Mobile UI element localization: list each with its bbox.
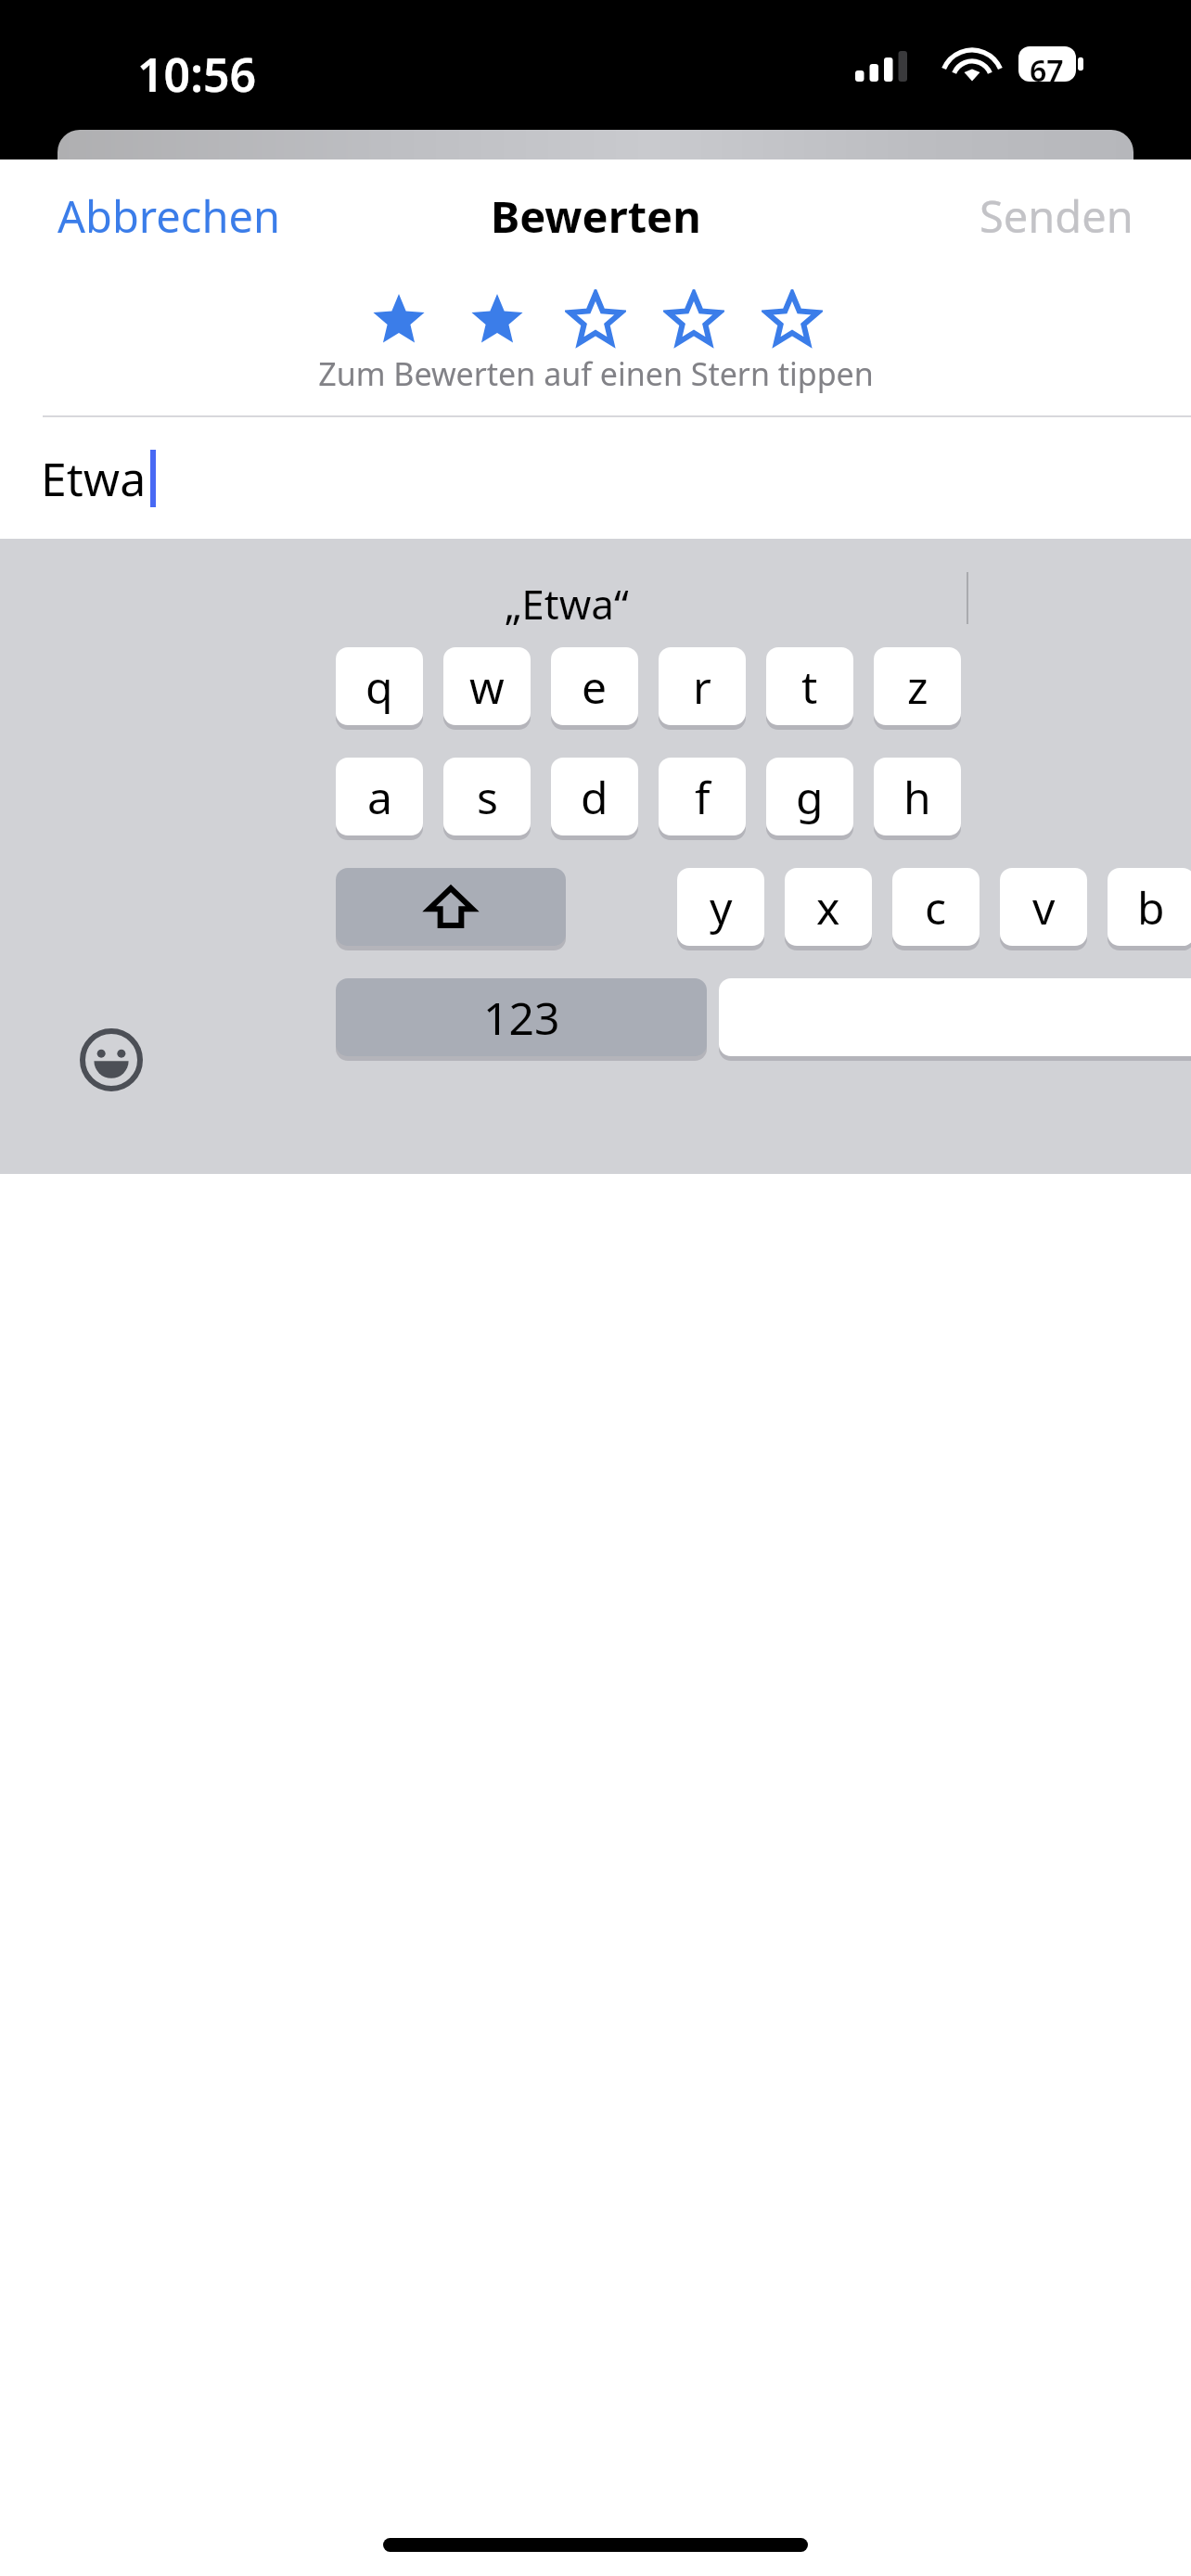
staticText: s <box>477 767 498 827</box>
staticText: c <box>925 877 947 937</box>
staticText: „Etwa“ <box>505 576 629 631</box>
button[interactable]: a <box>336 758 423 835</box>
staticText: e <box>582 657 608 717</box>
button[interactable]: „Etwa“ <box>482 567 651 641</box>
staticText: w <box>469 657 505 717</box>
staticText: Abbrechen <box>58 186 280 246</box>
staticText: b <box>1137 877 1165 937</box>
staticText: 123 <box>483 988 560 1048</box>
button[interactable]: Emoji <box>74 1023 148 1097</box>
staticText: r <box>693 657 711 717</box>
button[interactable]: Stern 2 von 5 <box>467 289 528 351</box>
button[interactable]: Etwa <box>0 417 1191 539</box>
button[interactable]: h <box>874 758 961 835</box>
staticText: 67 <box>1030 50 1064 91</box>
button[interactable]: v <box>1000 868 1087 946</box>
button[interactable]: s <box>443 758 531 835</box>
staticText: Senden <box>980 186 1133 246</box>
button[interactable]: Senden <box>959 173 1154 259</box>
staticText: t <box>801 657 818 717</box>
button[interactable]: c <box>892 868 980 946</box>
staticText: f <box>695 767 711 827</box>
staticText: v <box>1032 877 1056 937</box>
staticText: Bewerten <box>491 186 701 246</box>
staticText: Zum Bewerten auf einen Stern tippen <box>318 352 874 395</box>
button[interactable]: r <box>659 647 746 725</box>
button[interactable]: Abbrechen <box>37 173 301 259</box>
button[interactable]: g <box>766 758 853 835</box>
button[interactable]: b <box>1108 868 1191 946</box>
button[interactable]: f <box>659 758 746 835</box>
staticText: y <box>710 877 733 937</box>
button[interactable]: w <box>443 647 531 725</box>
button[interactable]: Stern 3 von 5 <box>565 289 626 351</box>
button[interactable]: d <box>551 758 638 835</box>
staticText: z <box>907 657 928 717</box>
staticText: 10:56 <box>137 43 257 106</box>
button[interactable]: z <box>874 647 961 725</box>
button[interactable]: Stern 1 von 5 <box>368 289 429 351</box>
button[interactable]: Stern 4 von 5 <box>663 289 724 351</box>
button[interactable]: y <box>677 868 764 946</box>
staticText: q <box>365 657 393 717</box>
staticText: a <box>367 767 392 827</box>
button[interactable]: x <box>785 868 872 946</box>
button[interactable]: Umschalttaste <box>336 868 566 946</box>
staticText: Etwa <box>41 447 147 510</box>
staticText: d <box>581 767 608 827</box>
staticText: g <box>796 767 824 827</box>
button[interactable]: Leertaste <box>719 978 1191 1056</box>
button[interactable]: t <box>766 647 853 725</box>
staticText: h <box>903 767 931 827</box>
button[interactable]: e <box>551 647 638 725</box>
button[interactable]: Stern 5 von 5 <box>762 289 823 351</box>
button[interactable]: q <box>336 647 423 725</box>
button[interactable]: 123 <box>336 978 707 1056</box>
staticText: x <box>816 877 840 937</box>
